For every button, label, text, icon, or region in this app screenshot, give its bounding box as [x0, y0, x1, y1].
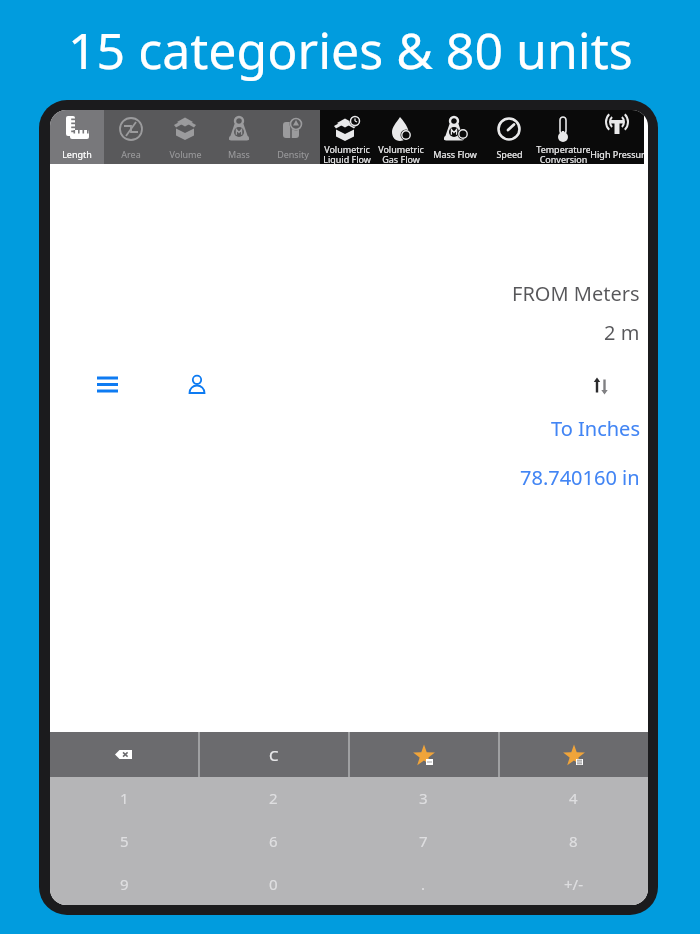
staticText: FROM Meters [512, 280, 640, 307]
staticText: C [269, 745, 279, 765]
button[interactable]: Volumetric Liquid Flow [320, 110, 374, 164]
button[interactable]: Mass Flow [428, 110, 482, 164]
staticText: 2 m [604, 319, 640, 346]
staticText: Volumetric Liquid Flow [323, 143, 371, 164]
button[interactable] [500, 732, 648, 777]
button[interactable] [50, 732, 198, 777]
button[interactable]: Length [50, 110, 104, 164]
staticText: 9 [120, 874, 129, 894]
staticText: 5 [120, 831, 129, 851]
button[interactable]: +/- [498, 862, 648, 905]
staticText: Mass Flow [433, 148, 477, 160]
button[interactable]: Temperature Conversion [536, 110, 590, 164]
staticText: 15 categories & 80 units [68, 16, 633, 84]
staticText: 4 [569, 788, 578, 808]
staticText: 7 [419, 831, 428, 851]
staticText: Speed [496, 148, 523, 160]
staticText: 1 [120, 788, 129, 808]
staticText: Temperature Conversion [536, 143, 590, 164]
button[interactable] [182, 370, 212, 400]
button[interactable]: C [200, 732, 348, 777]
button[interactable] [586, 371, 616, 401]
staticText: 2 [269, 788, 278, 808]
button[interactable]: FROM Meters [50, 278, 648, 308]
staticText: High Pressure [590, 148, 644, 160]
staticText: Volume [169, 148, 202, 160]
button[interactable]: Volume [158, 110, 212, 164]
button[interactable]: To Inches [50, 413, 648, 443]
button[interactable]: Density [266, 110, 320, 164]
button[interactable]: Mass [212, 110, 266, 164]
button[interactable]: 2 m [50, 317, 648, 347]
staticText: 3 [419, 788, 428, 808]
staticText: . [421, 874, 426, 894]
staticText: To Inches [551, 415, 640, 442]
staticText: 0 [269, 874, 278, 894]
staticText: Volumetric Gas Flow [378, 143, 424, 164]
staticText: +/- [564, 874, 583, 894]
staticText: Mass [228, 148, 250, 160]
staticText: Area [121, 148, 141, 160]
staticText: Density [277, 148, 309, 160]
button[interactable] [350, 732, 498, 777]
staticText: 6 [269, 831, 278, 851]
button[interactable]: High Pressure [590, 110, 644, 164]
button[interactable]: Volumetric Gas Flow [374, 110, 428, 164]
staticText: 8 [569, 831, 578, 851]
button[interactable]: Area [104, 110, 158, 164]
staticText: Length [62, 148, 92, 160]
button[interactable]: 9 [50, 862, 199, 905]
button[interactable]: Speed [482, 110, 536, 164]
button[interactable]: 78.740160 in [50, 462, 648, 492]
button[interactable] [93, 370, 123, 400]
staticText: 78.740160 in [520, 464, 640, 491]
